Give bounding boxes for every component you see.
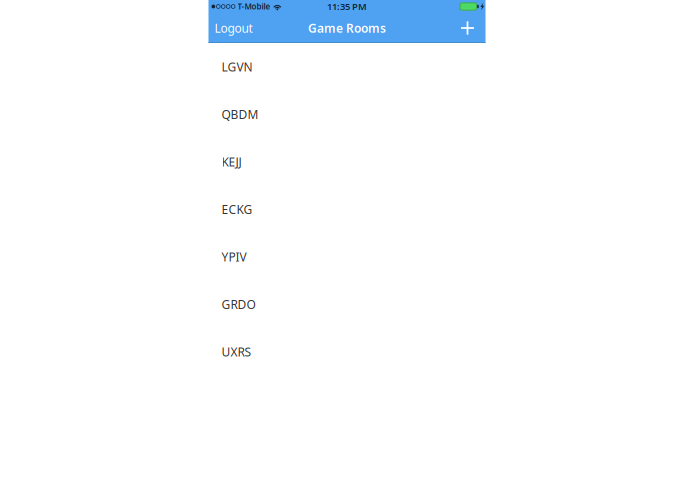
staticText: QBDM: [221, 106, 258, 122]
staticText: GRDO: [221, 296, 255, 312]
button[interactable]: LGVN: [208, 43, 485, 90]
button[interactable]: Logout: [209, 14, 261, 42]
button[interactable]: ECKG: [208, 185, 485, 233]
button[interactable]: QBDM: [208, 90, 485, 138]
button[interactable]: UXRS: [208, 328, 485, 375]
staticText: YPIV: [221, 249, 246, 265]
button[interactable]: KEJJ: [208, 138, 485, 185]
staticText: LGVN: [221, 59, 252, 75]
staticText: 11:35 PM: [327, 0, 367, 13]
staticText: KEJJ: [221, 154, 241, 170]
staticText: UXRS: [221, 344, 251, 360]
staticText: ECKG: [221, 201, 252, 217]
button[interactable]: YPIV: [208, 233, 485, 280]
staticText: Game Rooms: [308, 20, 386, 36]
staticText: T-Mobile: [237, 1, 270, 12]
staticText: Logout: [214, 20, 252, 36]
button[interactable]: GRDO: [208, 280, 485, 328]
button[interactable]: New game room: [454, 14, 485, 42]
